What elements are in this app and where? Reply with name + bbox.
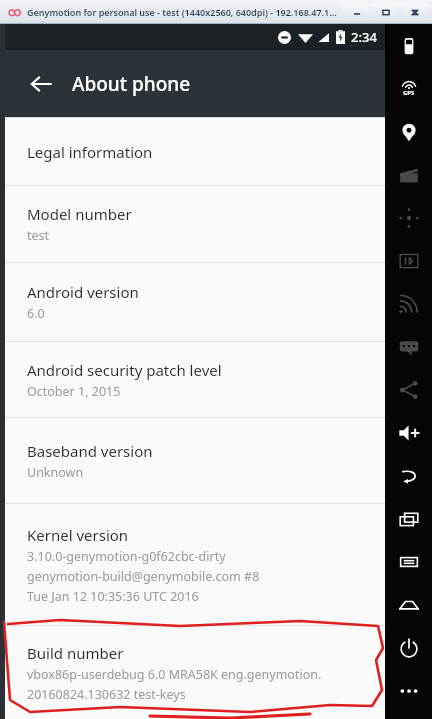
staticText: 2:34 — [351, 28, 377, 46]
staticText: test — [27, 227, 50, 244]
button[interactable]: GPS — [385, 67, 432, 110]
button[interactable]: Model number — [5, 186, 385, 262]
staticText: Model number — [27, 204, 132, 224]
staticText: 3.10.0-genymotion-g0f62cbc-dirty — [27, 548, 226, 565]
button[interactable]: Recent apps — [385, 497, 432, 540]
button[interactable]: Menu — [385, 540, 432, 583]
staticText: 20160824.130632 test-keys — [27, 686, 186, 703]
button[interactable]: Network — [385, 282, 432, 325]
button[interactable]: Battery — [385, 24, 432, 67]
button[interactable]: Android version — [5, 263, 385, 341]
staticText: October 1, 2015 — [27, 383, 121, 400]
staticText: Baseband version — [27, 441, 153, 461]
button[interactable]: Identifiers — [385, 239, 432, 282]
staticText: About phone — [72, 71, 191, 97]
staticText: Android version — [27, 282, 139, 302]
button[interactable]: Legal information — [5, 118, 385, 185]
staticText: genymotion-build@genymobile.com #8 — [27, 568, 260, 585]
staticText: Android security patch level — [27, 360, 222, 380]
staticText: Kernel version — [27, 525, 129, 545]
staticText: Legal information — [27, 142, 153, 162]
button[interactable]: Maximize — [372, 3, 399, 21]
staticText: 6.0 — [27, 305, 45, 322]
button[interactable]: Volume up — [385, 411, 432, 454]
staticText: Unknown — [27, 464, 84, 481]
staticText: Genymotion for personal use - test (1440… — [27, 6, 337, 18]
button[interactable]: Power — [385, 626, 432, 669]
button[interactable]: Location — [385, 110, 432, 153]
button[interactable]: Back — [385, 454, 432, 497]
button[interactable]: Android security patch level — [5, 342, 385, 417]
button[interactable]: Camera — [385, 153, 432, 196]
staticText: vbox86p-userdebug 6.0 MRA58K eng.genymot… — [27, 666, 322, 683]
button[interactable]: Messages — [385, 325, 432, 368]
button[interactable]: Share — [385, 368, 432, 411]
staticText: GPS — [403, 89, 415, 97]
button[interactable]: Build number — [5, 626, 385, 719]
button[interactable]: Home — [385, 583, 432, 626]
staticText: Tue Jan 12 10:35:36 UTC 2016 — [27, 588, 199, 605]
button[interactable]: Navigate up — [21, 64, 61, 104]
staticText: Build number — [27, 643, 124, 663]
button[interactable]: Close — [401, 3, 428, 21]
button[interactable]: Minimize — [343, 3, 370, 21]
button[interactable]: Kernel version — [5, 504, 385, 625]
button[interactable]: Baseband version — [5, 418, 385, 503]
button[interactable]: More options — [385, 669, 432, 712]
button[interactable]: Rotate — [385, 196, 432, 239]
